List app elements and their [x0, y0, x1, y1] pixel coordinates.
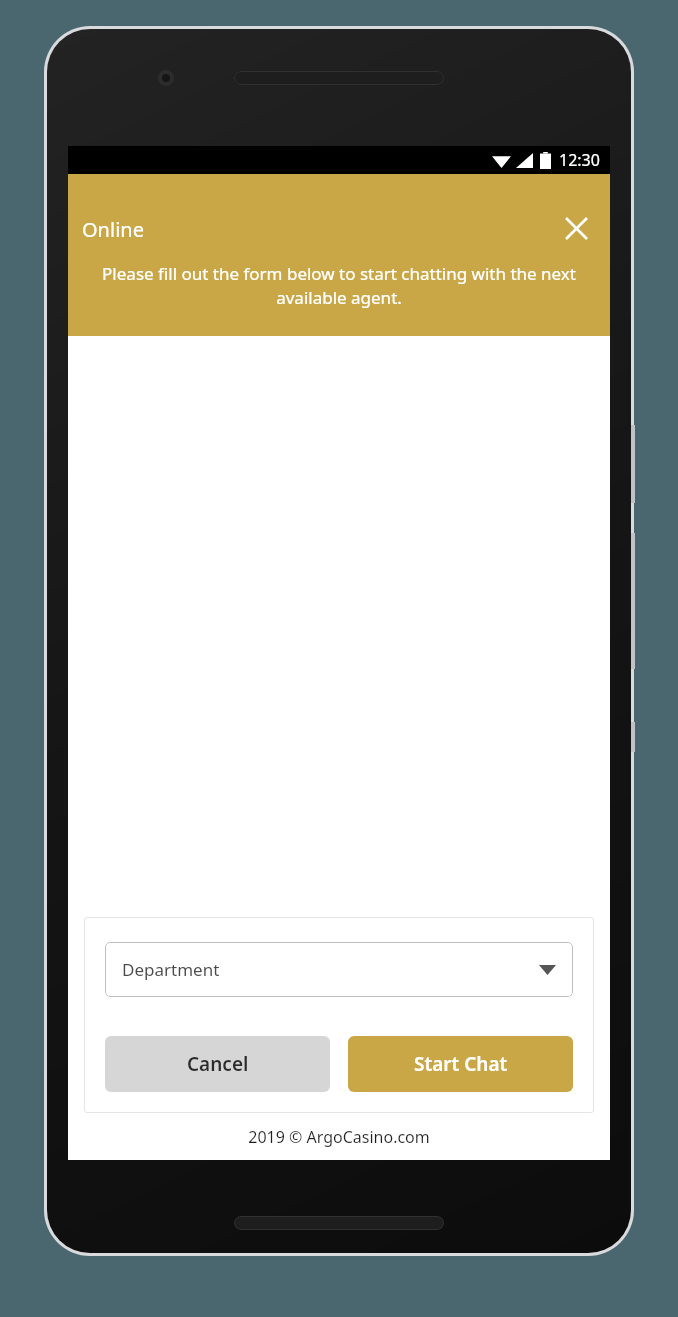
- button[interactable]: Close: [556, 208, 596, 248]
- staticText: Please fill out the form below to start …: [89, 262, 589, 309]
- staticText: 12:30: [559, 149, 600, 171]
- staticText: Start Chat: [414, 1051, 508, 1077]
- staticText: 2019 © ArgoCasino.com: [68, 1126, 610, 1148]
- staticText: Online: [82, 216, 144, 243]
- button[interactable]: Department: [105, 942, 573, 997]
- staticText: Cancel: [187, 1051, 249, 1077]
- button[interactable]: Start Chat: [348, 1036, 573, 1092]
- staticText: Department: [122, 958, 220, 981]
- button[interactable]: Cancel: [105, 1036, 330, 1092]
